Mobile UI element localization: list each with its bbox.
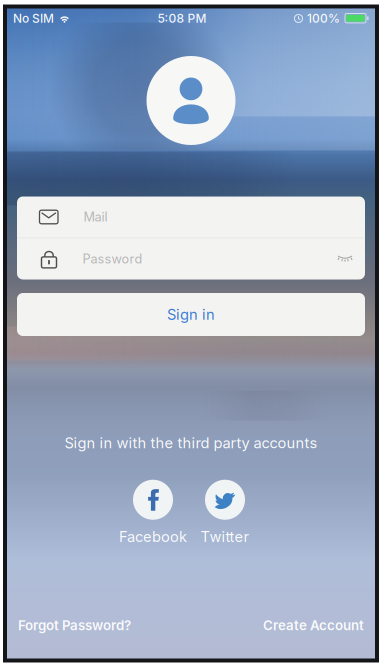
staticText: Facebook	[119, 528, 187, 545]
staticText: No SIM	[13, 11, 54, 26]
button[interactable]: Sign in	[17, 293, 365, 336]
staticText: 5:08 PM	[157, 11, 206, 26]
staticText: Password	[82, 251, 142, 266]
button[interactable]: Password	[17, 238, 365, 279]
button[interactable]: Create Account	[263, 613, 364, 637]
button[interactable]: Mail	[17, 196, 365, 237]
staticText: Mail	[83, 209, 107, 225]
staticText: 100%	[307, 11, 340, 26]
staticText: Create Account	[263, 617, 364, 633]
button[interactable]: Forgot Password?	[18, 613, 131, 637]
staticText: Twitter	[200, 528, 249, 545]
staticText: Forgot Password?	[18, 617, 131, 633]
button[interactable]: Twitter	[190, 480, 260, 545]
button[interactable]: Facebook	[118, 480, 188, 545]
staticText: Sign in	[167, 306, 215, 323]
staticText: Sign in with the third party accounts	[64, 434, 317, 452]
